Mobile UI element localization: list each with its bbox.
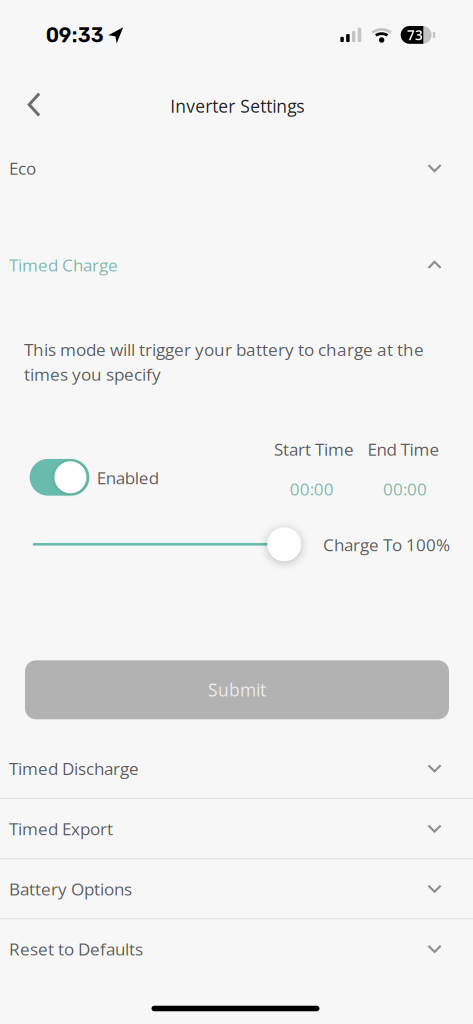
staticText: Battery Options [9,877,132,900]
staticText: This mode will trigger your battery to c… [24,338,424,386]
button[interactable]: Timed Discharge [0,738,473,798]
staticText: Timed Export [9,817,113,840]
staticText: End Time [367,438,439,461]
staticText: Inverter Settings [170,94,304,118]
button[interactable]: Submit [25,660,449,719]
staticText: Enabled [97,466,159,489]
staticText: 00:00 [383,477,427,501]
button[interactable]: Back [11,83,57,127]
staticText: 00:00 [290,477,334,501]
button[interactable]: Charge level [33,526,301,562]
staticText: Timed Charge [9,253,118,277]
staticText: 09:33 [46,23,104,47]
staticText: Timed Discharge [9,757,139,780]
staticText: Submit [208,678,266,702]
staticText: Reset to Defaults [9,937,143,960]
button[interactable]: Timed Charge [0,235,473,295]
button[interactable]: Battery Options [0,859,473,919]
button[interactable]: Enabled [30,459,89,496]
button[interactable]: Reset to Defaults [0,919,473,979]
staticText: 73 [407,26,423,44]
button[interactable]: 00:00 [370,475,440,503]
button[interactable]: 00:00 [277,475,347,503]
staticText: Eco [9,157,36,180]
button[interactable]: Eco [0,138,473,198]
staticText: Start Time [274,438,354,461]
staticText: Charge To 100% [323,533,450,556]
button[interactable]: Timed Export [0,798,473,859]
